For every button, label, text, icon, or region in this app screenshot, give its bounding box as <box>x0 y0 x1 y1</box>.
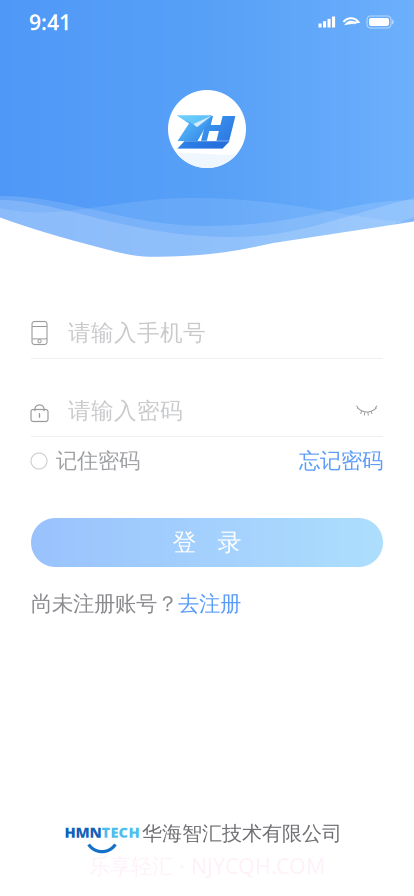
button[interactable]: 登 录 <box>31 518 383 567</box>
staticText: 请输入密码 <box>68 397 183 425</box>
staticText: TECH <box>101 822 139 842</box>
staticText: 华海智汇技术有限公司 <box>142 821 342 846</box>
staticText: 忘记密码 <box>299 448 383 474</box>
button[interactable]: 显示密码 <box>351 399 383 422</box>
staticText: 记住密码 <box>56 448 140 474</box>
button[interactable]: 记住密码 <box>31 446 140 476</box>
staticText: 去注册 <box>178 591 241 617</box>
staticText: 尚未注册账号？ <box>31 591 178 617</box>
staticText: 请输入手机号 <box>68 319 206 347</box>
button[interactable]: 忘记密码 <box>299 446 383 476</box>
staticText: 登 录 <box>172 528 241 557</box>
staticText: HMN <box>64 822 101 842</box>
button[interactable]: 去注册 <box>178 591 241 617</box>
staticText: 9:41 <box>29 8 71 36</box>
staticText: 乐享轻汇 · NJYCQH.COM <box>89 852 325 880</box>
